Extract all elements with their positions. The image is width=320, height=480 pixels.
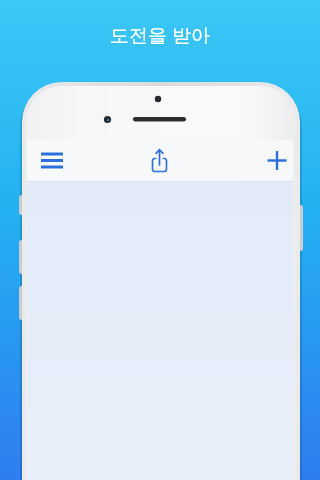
button[interactable]: Menu	[32, 142, 72, 180]
button[interactable]: Add	[258, 142, 296, 180]
staticText: 도전을 받아	[110, 22, 210, 48]
button[interactable]: Share	[141, 142, 179, 180]
